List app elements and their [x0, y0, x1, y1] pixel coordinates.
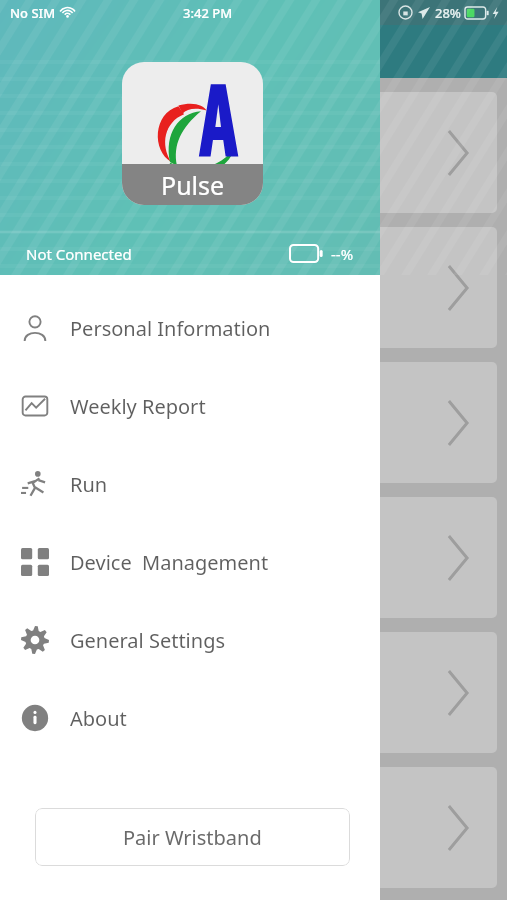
staticText: General Settings: [70, 627, 226, 654]
staticText: Personal Information: [70, 315, 271, 342]
staticText: 3:42 PM: [183, 4, 233, 22]
staticText: 28%: [435, 4, 461, 22]
button[interactable]: Current HR : --: [10, 362, 497, 483]
staticText: Not Connected: [26, 244, 132, 264]
staticText: Run: [70, 471, 108, 498]
staticText: Deep Sleep : --: [28, 249, 156, 275]
staticText: --%: [331, 244, 354, 264]
button[interactable]: Deep Sleep : --: [10, 227, 497, 348]
button[interactable]: Blood Glucose : --: [10, 767, 497, 888]
button[interactable]: Today Steps: [10, 92, 497, 213]
staticText: About: [70, 705, 127, 732]
staticText: Current HR : --: [28, 384, 155, 410]
staticText: Measure: [213, 38, 295, 65]
button[interactable]: Current Sp02 : --%: [10, 632, 497, 753]
staticText: Today Steps: [28, 114, 135, 140]
staticText: No SIM: [10, 4, 56, 22]
staticText: Weekly Report: [70, 393, 206, 420]
staticText: Device Management: [70, 549, 269, 576]
button[interactable]: Run: [0, 445, 380, 523]
button[interactable]: Device Management: [0, 523, 380, 601]
button[interactable]: Pair Wristband: [35, 808, 350, 866]
button[interactable]: Weekly Report: [0, 367, 380, 445]
staticText: Blood Glucose : --: [28, 789, 183, 815]
button[interactable]: Current BP : --: [10, 497, 497, 618]
staticText: Pulse: [161, 168, 225, 202]
staticText: Pair Wristband: [123, 824, 262, 851]
button[interactable]: General Settings: [0, 601, 380, 679]
button[interactable]: About: [0, 679, 380, 757]
button[interactable]: Personal Information: [0, 289, 380, 367]
